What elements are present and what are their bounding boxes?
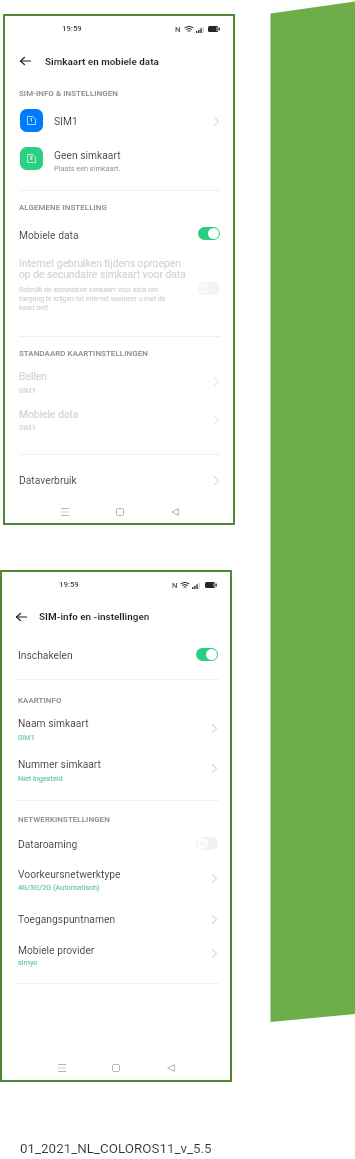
- staticText: Gebruik de secundaire simkaart voor data…: [19, 286, 177, 312]
- button[interactable]: Home: [109, 501, 131, 523]
- staticText: SIM1: [19, 386, 36, 395]
- staticText: Mobiele data: [19, 408, 79, 420]
- staticText: 19:59: [59, 580, 79, 589]
- staticText: 2: [30, 156, 33, 162]
- staticText: Simkaart en mobiele data: [45, 56, 159, 68]
- button[interactable]: Back: [12, 48, 38, 74]
- button[interactable]: Off: [198, 282, 220, 295]
- button[interactable]: Back: [160, 1057, 182, 1079]
- button[interactable]: Back: [8, 604, 34, 630]
- button[interactable]: [3, 140, 235, 176]
- staticText: N: [172, 581, 178, 590]
- button[interactable]: [0, 643, 232, 671]
- staticText: Internet gebruiken tijdens oproepen op d…: [19, 257, 189, 281]
- button[interactable]: Home: [105, 1057, 127, 1079]
- button[interactable]: On: [198, 227, 220, 240]
- staticText: 1: [30, 118, 33, 124]
- button[interactable]: On: [196, 648, 218, 661]
- button[interactable]: [3, 406, 235, 438]
- staticText: Dataroaming: [18, 838, 78, 850]
- staticText: Toegangspuntnamen: [18, 913, 116, 925]
- button[interactable]: [0, 906, 232, 932]
- button[interactable]: [0, 832, 232, 858]
- staticText: Mobiele provider: [18, 944, 95, 956]
- staticText: Nummer simkaart: [18, 758, 101, 770]
- staticText: NETWERKINSTELLINGEN: [18, 815, 110, 824]
- button[interactable]: [0, 863, 232, 895]
- button[interactable]: [0, 938, 232, 970]
- staticText: ALGEMENE INSTELLING: [19, 203, 108, 212]
- staticText: Inschakelen: [18, 649, 73, 661]
- staticText: Mobiele data: [19, 229, 79, 241]
- button[interactable]: Recent apps: [54, 501, 76, 523]
- button[interactable]: [0, 752, 232, 784]
- staticText: 4G/3G/2G (Automatisch): [18, 883, 100, 892]
- staticText: Plaats een simkaart.: [54, 164, 121, 173]
- staticText: Niet ingesteld: [18, 774, 63, 783]
- button[interactable]: [3, 222, 235, 248]
- staticText: SIM1: [54, 115, 78, 127]
- staticText: SIM1: [18, 733, 35, 742]
- button[interactable]: Off: [196, 837, 218, 850]
- staticText: Geen simkaart: [54, 149, 121, 161]
- staticText: 01_2021_NL_COLOROS11_v_5.5: [20, 1141, 212, 1157]
- staticText: STANDAARD KAARTINSTELLINGEN: [19, 349, 148, 358]
- staticText: Bellen: [19, 370, 48, 382]
- staticText: N: [175, 25, 181, 34]
- button[interactable]: [3, 368, 235, 400]
- staticText: KAARTINFO: [18, 696, 62, 705]
- button[interactable]: Back: [164, 501, 186, 523]
- button[interactable]: [3, 466, 235, 494]
- staticText: SIM1: [19, 423, 36, 432]
- staticText: Naam simkaart: [18, 717, 89, 729]
- staticText: SIM-info en -instellingen: [39, 611, 150, 623]
- staticText: simyo: [18, 958, 38, 967]
- staticText: SIM-INFO & INSTELLINGEN: [19, 89, 119, 98]
- button[interactable]: [0, 712, 232, 744]
- button[interactable]: Recent apps: [51, 1057, 73, 1079]
- button[interactable]: [3, 104, 235, 136]
- staticText: Dataverbruik: [19, 474, 77, 486]
- staticText: Voorkeursnetwerktype: [18, 868, 121, 880]
- staticText: 19:59: [62, 24, 82, 33]
- button[interactable]: [3, 255, 235, 317]
